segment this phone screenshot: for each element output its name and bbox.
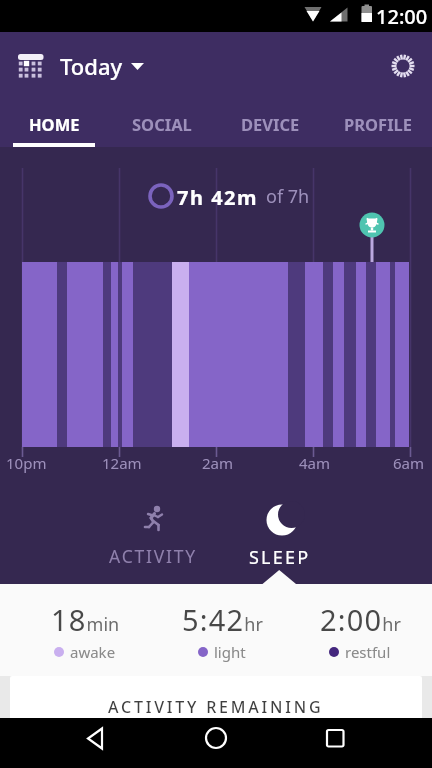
button[interactable]: HOME [0,100,108,147]
button[interactable]: SLEEP [234,502,326,572]
staticText: 5:42hr [182,600,263,639]
staticText: SOCIAL [132,113,192,135]
button[interactable]: PROFILE [324,100,432,147]
staticText: SLEEP [249,545,311,570]
staticText: ACTIVITY REMAINING [108,696,324,718]
staticText: of 7h [266,184,310,209]
staticText: HOME [29,113,80,135]
staticText: restful [345,642,391,662]
staticText: 12:00 [376,3,428,30]
staticText: Today [60,51,123,81]
staticText: 2:00hr [320,600,401,639]
staticText: 7h 42m [177,184,259,211]
button[interactable] [61,718,131,768]
button[interactable]: SOCIAL [108,100,216,147]
staticText: 18min [51,600,120,639]
button[interactable]: ACTIVITY [100,505,206,575]
staticText: 4am [299,453,331,473]
button[interactable] [181,718,251,768]
staticText: light [214,642,246,662]
button[interactable] [388,51,418,81]
staticText: DEVICE [241,113,300,135]
staticText: 12am [102,453,142,473]
staticText: ACTIVITY [109,544,198,568]
staticText: 10pm [6,453,47,473]
button[interactable]: ACTIVITY REMAINING [10,676,422,718]
staticText: 6am [393,453,425,473]
staticText: awake [70,642,116,662]
staticText: 2am [202,453,234,473]
button[interactable] [300,718,370,768]
button[interactable]: Today [18,51,145,81]
button[interactable]: DEVICE [216,100,324,147]
staticText: PROFILE [344,113,413,135]
